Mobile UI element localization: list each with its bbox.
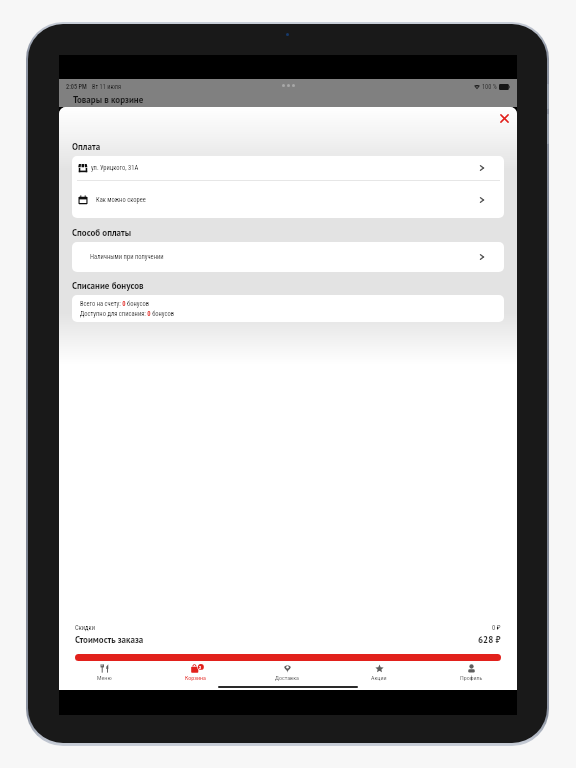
staticText: 2:05 PM (66, 83, 87, 90)
staticText: 100 % (482, 83, 497, 90)
staticText: Корзина (185, 674, 206, 681)
staticText: Профиль (460, 674, 483, 681)
staticText: Доставка (275, 674, 299, 681)
button[interactable]: Доставка (241, 661, 333, 690)
staticText: Вт 11 июля (92, 83, 122, 90)
button[interactable]: Наличными при получении (72, 242, 504, 272)
staticText: Меню (97, 674, 112, 681)
staticText: Стоимость заказа (75, 634, 144, 646)
staticText: Товары в корзине (73, 94, 144, 106)
staticText: Скидки (75, 624, 96, 632)
button[interactable]: Как можно скорее (72, 181, 504, 218)
button[interactable]: 2 (150, 661, 241, 690)
staticText: 0 ₽ (492, 624, 501, 632)
staticText: Акции (371, 674, 387, 681)
staticText: 2 (199, 665, 202, 670)
staticText: Как можно скорее (96, 196, 146, 204)
staticText: Списание бонусов (72, 280, 144, 292)
button[interactable]: Закрыть (499, 113, 510, 124)
staticText: Оплата (72, 141, 101, 153)
staticText: 628 ₽ (478, 634, 501, 646)
button[interactable]: Акции (333, 661, 425, 690)
staticText: Всего на счету: 0 бонусов (80, 300, 149, 308)
staticText: Способ оплаты (72, 227, 132, 239)
button[interactable]: Профиль (425, 661, 517, 690)
button[interactable]: Меню (59, 661, 150, 690)
staticText: Наличными при получении (90, 253, 164, 261)
staticText: ул. Урицкого, 31А (91, 164, 139, 172)
button[interactable]: ул. Урицкого, 31А (72, 156, 504, 180)
button[interactable]: Оформить заказ (75, 654, 501, 661)
staticText: Доступно для списания: 0 бонусов (80, 310, 175, 318)
